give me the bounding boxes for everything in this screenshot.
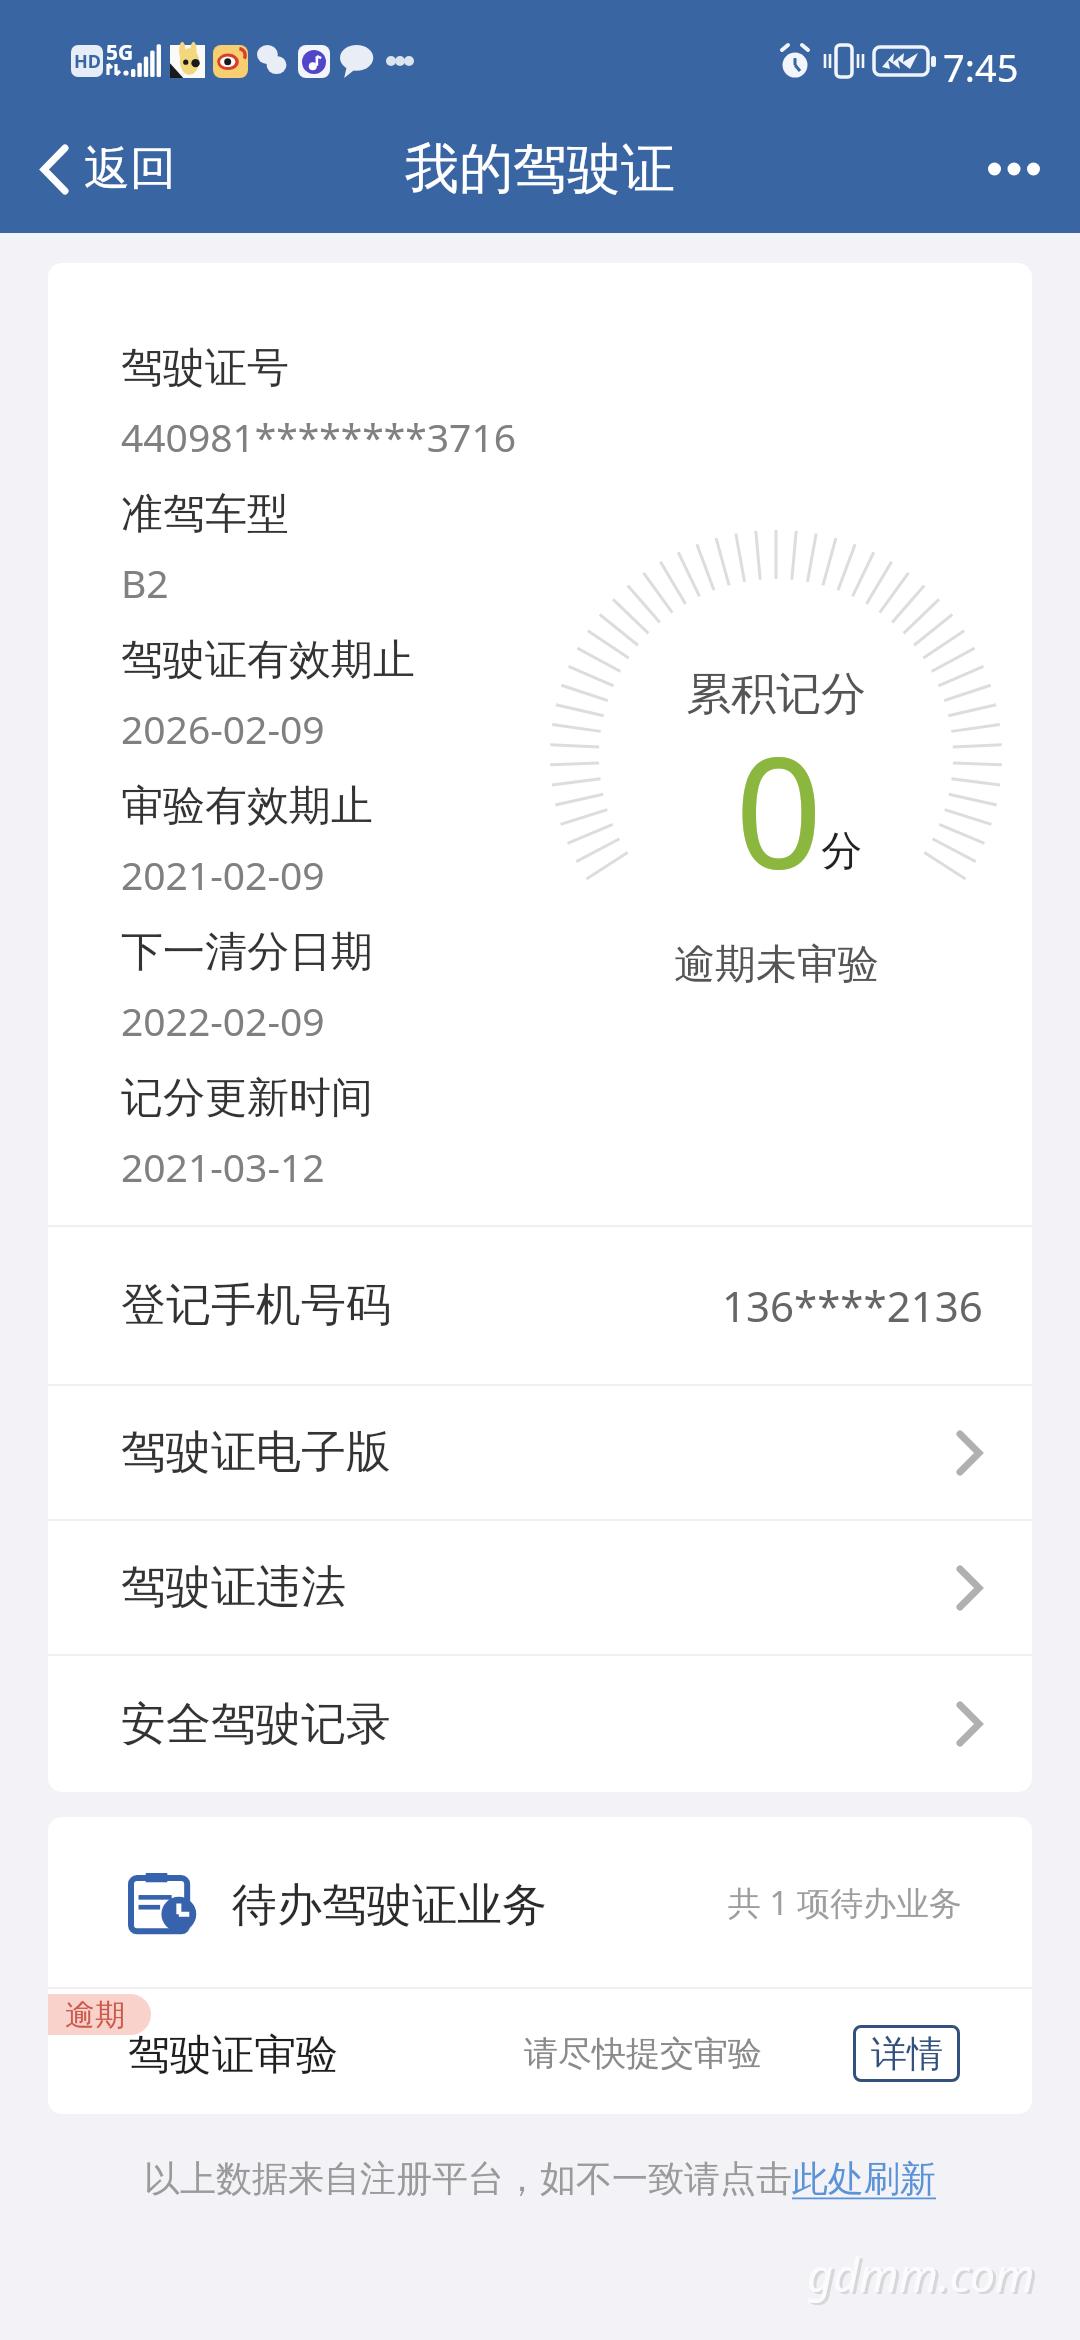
staticText: 下一清分日期 bbox=[121, 926, 373, 979]
staticText: 记分更新时间 bbox=[121, 1072, 373, 1125]
staticText: 逾期未审验 bbox=[674, 939, 879, 991]
staticText: gdmm.com bbox=[807, 2244, 1035, 2305]
staticText: 审验有效期止 bbox=[121, 780, 373, 833]
staticText: 驾驶证电子版 bbox=[121, 1424, 391, 1481]
staticText: 以上数据来自注册平台，如不一致请点击 bbox=[144, 2156, 792, 2201]
staticText: B2 bbox=[121, 556, 169, 609]
staticText: 7:45 bbox=[943, 41, 1019, 93]
staticText: 累积记分 bbox=[686, 666, 866, 723]
button[interactable]: 返回 bbox=[0, 140, 196, 198]
staticText: 详情 bbox=[871, 2031, 943, 2076]
button[interactable]: 驾驶证违法 bbox=[48, 1521, 1032, 1654]
staticText: 2022-02-09 bbox=[121, 994, 325, 1047]
staticText: 5G bbox=[106, 38, 134, 67]
staticText: 分 bbox=[821, 826, 862, 878]
button[interactable]: 安全驾驶记录 bbox=[48, 1656, 1032, 1792]
staticText: 共 1 项待办业务 bbox=[728, 1880, 963, 1925]
staticText: 待办驾驶证业务 bbox=[232, 1877, 547, 1934]
button[interactable]: 驾驶证电子版 bbox=[48, 1386, 1032, 1519]
staticText: 2021-02-09 bbox=[121, 848, 325, 901]
staticText: 驾驶证号 bbox=[121, 342, 289, 395]
staticText: 136****2136 bbox=[722, 1277, 983, 1334]
staticText: 0 bbox=[735, 704, 823, 912]
staticText: 准驾车型 bbox=[121, 488, 289, 541]
staticText: 2026-02-09 bbox=[121, 702, 325, 755]
button[interactable]: 更多 bbox=[956, 162, 1080, 176]
staticText: 驾驶证审验 bbox=[128, 2029, 338, 2082]
staticText: 登记手机号码 bbox=[121, 1277, 391, 1334]
staticText: 驾驶证违法 bbox=[121, 1559, 346, 1616]
staticText: HD bbox=[74, 49, 101, 74]
staticText: 此处刷新 bbox=[792, 2156, 936, 2201]
button[interactable]: 待办驾驶证业务 bbox=[48, 1817, 1032, 1987]
staticText: 请尽快提交审验 bbox=[524, 2032, 762, 2075]
button[interactable]: 此处刷新 bbox=[792, 2156, 936, 2201]
staticText: 我的驾驶证 bbox=[405, 135, 675, 203]
button[interactable]: 详情 bbox=[853, 2025, 960, 2082]
staticText: gdmm.com bbox=[810, 2246, 1038, 2307]
staticText: 2021-03-12 bbox=[121, 1140, 325, 1193]
button[interactable]: 登记手机号码 bbox=[48, 1227, 1032, 1384]
staticText: 驾驶证有效期止 bbox=[121, 634, 415, 687]
staticText: 安全驾驶记录 bbox=[121, 1696, 391, 1753]
staticText: 返回 bbox=[84, 140, 176, 198]
staticText: 逾期 bbox=[65, 1996, 125, 2034]
staticText: 440981********3716 bbox=[121, 410, 516, 463]
